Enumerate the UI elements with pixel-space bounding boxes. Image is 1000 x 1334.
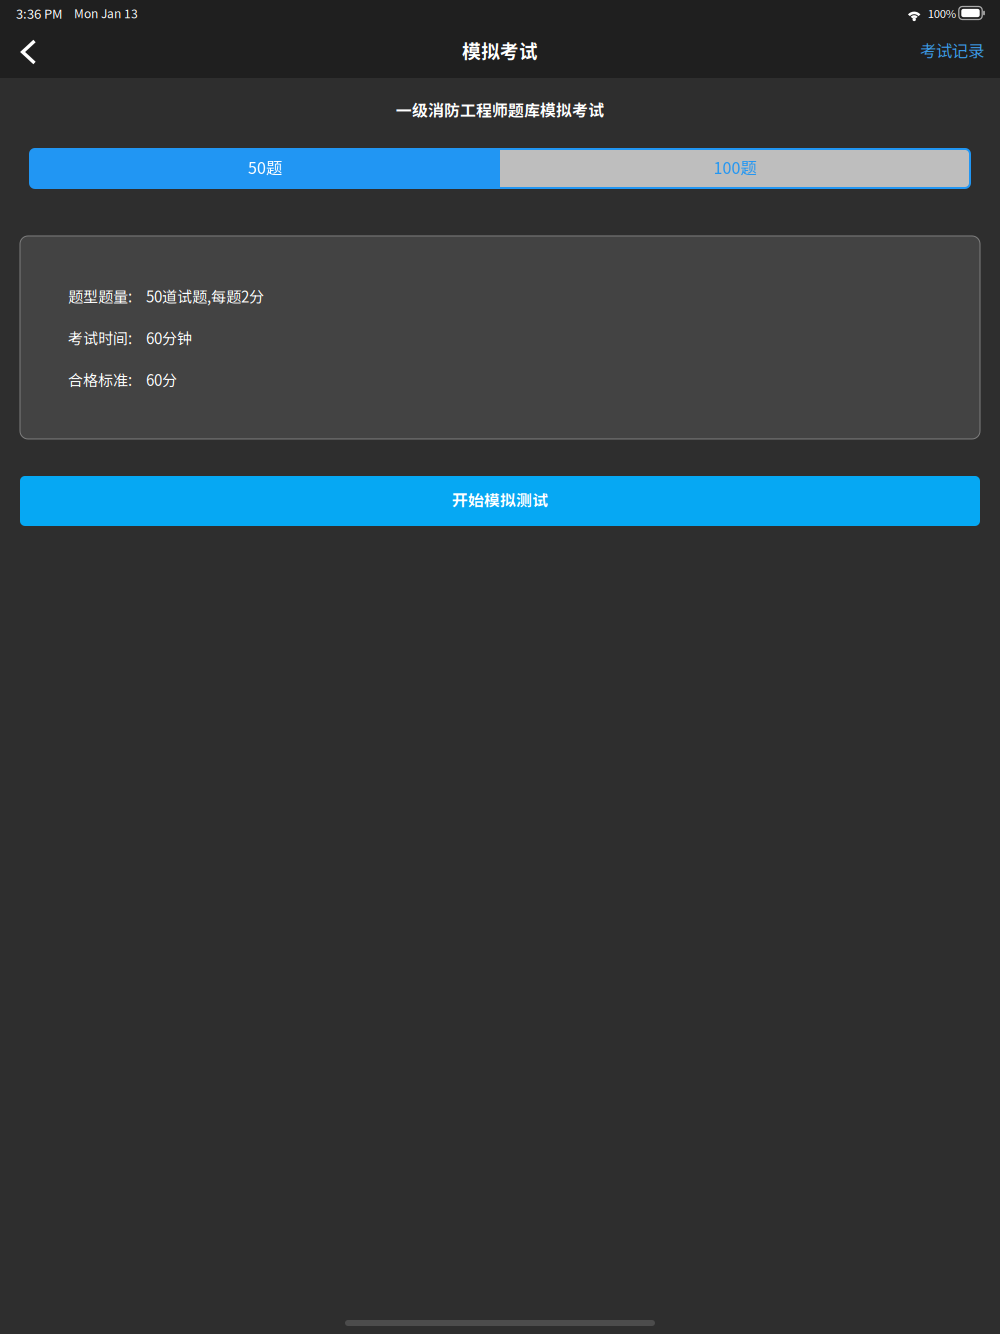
button[interactable]: 考试记录 <box>902 25 1000 79</box>
staticText: 考试时间: <box>68 327 132 349</box>
button[interactable]: 50题 <box>30 149 500 188</box>
staticText: 模拟考试 <box>462 36 538 63</box>
staticText: 60分 <box>146 369 177 390</box>
button[interactable]: Back <box>0 26 55 78</box>
staticText: 60分钟 <box>146 327 192 349</box>
button[interactable]: 开始模拟测试 <box>0 476 1000 526</box>
staticText: 开始模拟测试 <box>452 488 548 511</box>
staticText: 一级消防工程师题库模拟考试 <box>396 98 604 121</box>
staticText: 50题 <box>248 155 282 179</box>
button[interactable]: 100题 <box>500 149 970 188</box>
staticText: 3:36 PM <box>16 4 63 22</box>
staticText: 100% <box>928 5 956 21</box>
staticText: 50道试题,每题2分 <box>146 285 264 307</box>
staticText: 合格标准: <box>68 369 132 390</box>
staticText: Mon Jan 13 <box>74 4 138 22</box>
staticText: 考试记录 <box>920 38 984 62</box>
staticText: 100题 <box>713 155 756 179</box>
staticText: 题型题量: <box>68 285 132 307</box>
